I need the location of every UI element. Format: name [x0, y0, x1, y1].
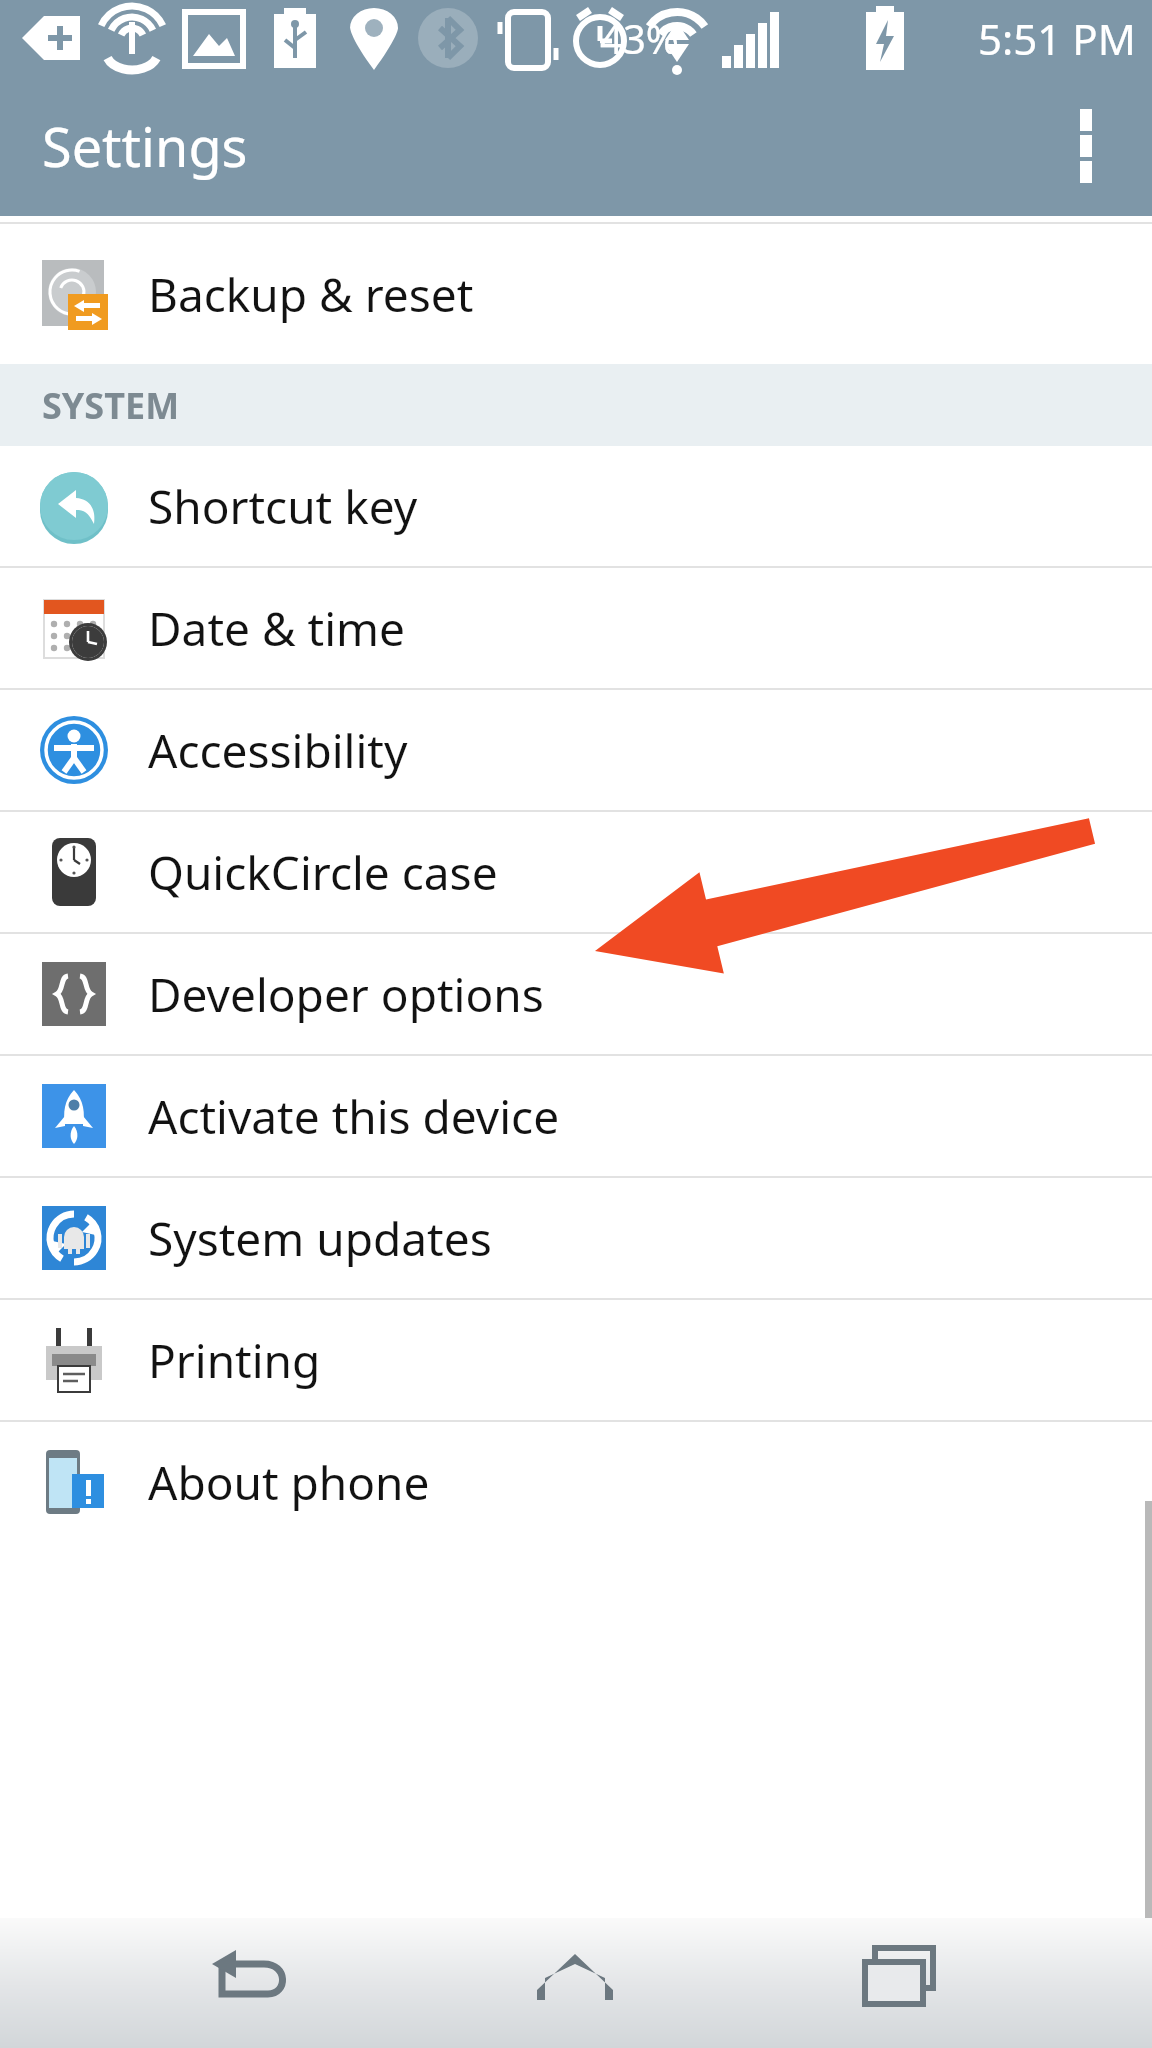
button[interactable]: Backup & reset [0, 224, 1152, 364]
button[interactable]: Recent apps [827, 1918, 977, 2048]
staticText: About phone [148, 1451, 430, 1514]
staticText: Date & time [148, 597, 405, 660]
button[interactable]: QuickCircle case [0, 812, 1152, 932]
button[interactable]: Shortcut key [0, 446, 1152, 566]
staticText: Accessibility [148, 719, 408, 782]
staticText: Settings [42, 109, 248, 183]
button[interactable]: Home [501, 1918, 651, 2048]
staticText: Printing [148, 1329, 321, 1392]
button[interactable]: System updates [0, 1178, 1152, 1298]
button[interactable]: More options [1038, 98, 1134, 194]
staticText: Shortcut key [148, 475, 418, 538]
staticText: Activate this device [148, 1085, 560, 1148]
staticText: Backup & reset [148, 263, 474, 326]
button[interactable]: Accessibility [0, 690, 1152, 810]
staticText: SYSTEM [42, 381, 180, 430]
staticText: 43% [600, 11, 679, 65]
staticText: QuickCircle case [148, 841, 498, 904]
button[interactable]: Back [176, 1918, 326, 2048]
staticText: System updates [148, 1207, 492, 1270]
button[interactable]: About phone [0, 1422, 1152, 1542]
button[interactable]: Activate this device [0, 1056, 1152, 1176]
staticText: 5:51 PM [978, 10, 1136, 67]
button[interactable]: Developer options [0, 934, 1152, 1054]
button[interactable]: Date & time [0, 568, 1152, 688]
button[interactable]: Printing [0, 1300, 1152, 1420]
staticText: Developer options [148, 963, 544, 1026]
